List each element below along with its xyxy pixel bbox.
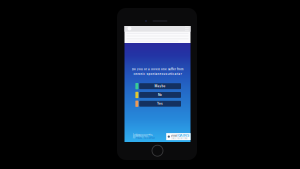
button[interactable]: viral GAINS bbox=[166, 133, 191, 140]
staticText: Do you or a loved one suffer from bbox=[132, 68, 183, 71]
button[interactable]: Terms of use bbox=[144, 137, 155, 139]
staticText: contacted by a research site bbox=[133, 134, 153, 136]
staticText: about this clinical study. bbox=[133, 135, 147, 137]
staticText: GAINS bbox=[178, 133, 189, 138]
staticText: No bbox=[158, 93, 162, 97]
staticText: Yes bbox=[157, 102, 163, 106]
staticText: Chronic Spontaneous Urticaria? bbox=[133, 72, 181, 76]
staticText: Ad bbox=[133, 137, 135, 139]
staticText: See our privacy policy. bbox=[133, 136, 149, 138]
button[interactable]: Yes bbox=[135, 101, 181, 107]
button[interactable]: Privacy bbox=[136, 137, 142, 139]
staticText: Terms of use bbox=[144, 137, 155, 139]
button[interactable]: No bbox=[135, 92, 181, 98]
staticText: Maybe bbox=[155, 84, 166, 88]
staticText: viral bbox=[171, 133, 178, 138]
button[interactable]: Maybe bbox=[135, 83, 181, 89]
staticText: Privacy bbox=[136, 137, 142, 139]
staticText: CLINICAL TRIAL MATCHING bbox=[171, 138, 188, 140]
staticText: By clicking you consent to be bbox=[133, 134, 152, 135]
